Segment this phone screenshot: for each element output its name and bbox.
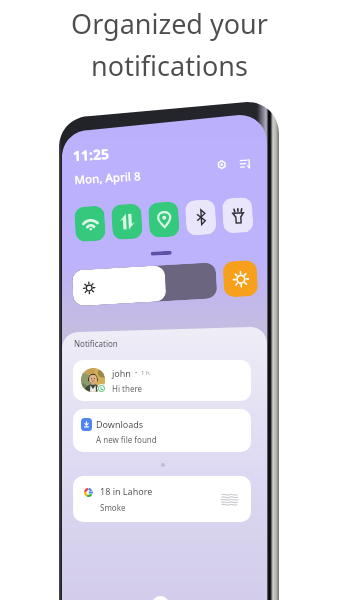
staticText: Organized your xyxy=(71,5,268,42)
staticText: 1 h xyxy=(141,369,150,377)
staticText: 18 in Lahore xyxy=(100,485,153,497)
button[interactable]: Downloads xyxy=(73,409,251,452)
button[interactable]: Mobile data xyxy=(111,203,143,240)
button[interactable]: Brightness xyxy=(72,262,217,306)
button[interactable]: Sort notifications xyxy=(234,153,255,174)
staticText: • xyxy=(135,369,138,377)
button[interactable]: Wi-Fi xyxy=(74,205,106,242)
staticText: Hi there xyxy=(112,383,143,394)
button[interactable]: Settings xyxy=(211,154,232,175)
staticText: A new file found xyxy=(96,434,157,445)
staticText: john xyxy=(112,367,131,379)
staticText: Smoke xyxy=(100,502,126,513)
button[interactable]: 18 in Lahore xyxy=(73,476,251,522)
staticText: Mon, April 8 xyxy=(74,168,142,188)
button[interactable]: john xyxy=(73,360,251,401)
button[interactable]: Flashlight xyxy=(222,197,254,234)
staticText: 11:25 xyxy=(72,144,109,165)
staticText: Notification xyxy=(74,338,118,349)
staticText: Downloads xyxy=(96,418,144,430)
staticText: notifications xyxy=(91,47,248,84)
button[interactable]: Bluetooth xyxy=(185,199,217,236)
button[interactable]: Adaptive brightness xyxy=(222,260,258,298)
button[interactable]: Location xyxy=(148,201,180,238)
